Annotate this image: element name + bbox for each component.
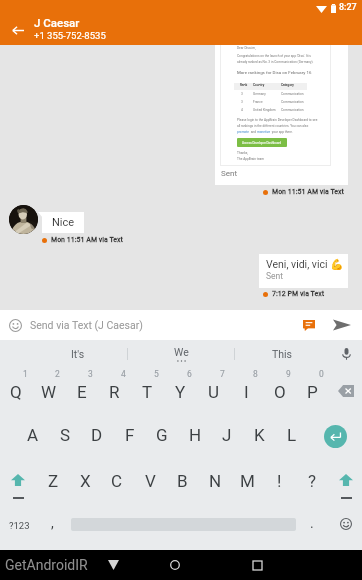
staticText: Germany xyxy=(253,92,266,96)
staticText: U xyxy=(208,382,220,402)
button[interactable]: C xyxy=(101,457,133,503)
button[interactable]: Shift xyxy=(1,457,35,503)
button[interactable]: S xyxy=(49,411,81,457)
staticText: France xyxy=(253,100,263,104)
button[interactable]: ? xyxy=(296,457,328,503)
staticText: Veni, vidi, vici 💪 xyxy=(266,258,344,270)
staticText: L xyxy=(287,425,297,445)
staticText: your app there. xyxy=(271,130,293,134)
staticText: ? xyxy=(308,471,317,491)
button[interactable]: M xyxy=(231,457,263,503)
staticText: 7:12 PM via Text xyxy=(272,290,325,298)
staticText: 2 xyxy=(55,369,60,379)
staticText: More rankings for Disa on February 16 xyxy=(237,70,312,75)
staticText: 6 xyxy=(187,369,192,379)
staticText: X xyxy=(80,471,91,491)
staticText: all rankings in the different countries.… xyxy=(237,124,309,128)
button[interactable]: 8 xyxy=(230,367,263,411)
staticText: 8:27 xyxy=(339,2,357,13)
staticText: This xyxy=(272,348,293,360)
button[interactable]: B xyxy=(166,457,198,503)
button[interactable]: A xyxy=(17,411,49,457)
staticText: I xyxy=(244,382,249,402)
staticText: S xyxy=(60,425,71,445)
staticText: The AppBrain team xyxy=(237,157,265,161)
staticText: 7 xyxy=(220,369,225,379)
button[interactable]: 5 xyxy=(131,367,164,411)
button[interactable]: Choose app xyxy=(298,314,320,336)
button[interactable]: J xyxy=(211,411,243,457)
staticText: W xyxy=(41,382,57,402)
button[interactable]: L xyxy=(276,411,308,457)
button[interactable]: It's xyxy=(28,340,128,367)
button[interactable]: X xyxy=(69,457,101,503)
button[interactable]: ?123 xyxy=(2,503,37,550)
button[interactable]: Emoji keyboard xyxy=(329,503,362,550)
staticText: We xyxy=(174,346,189,358)
staticText: D xyxy=(91,425,103,445)
staticText: M xyxy=(240,471,255,491)
button[interactable]: V xyxy=(134,457,166,503)
button[interactable]: Enter xyxy=(312,411,359,457)
staticText: R xyxy=(109,382,120,402)
button[interactable]: , xyxy=(36,503,69,550)
staticText: K xyxy=(254,425,265,445)
button[interactable]: 3 xyxy=(65,367,98,411)
button[interactable]: N xyxy=(199,457,231,503)
button[interactable]: H xyxy=(179,411,211,457)
button[interactable]: Home xyxy=(162,552,188,578)
button[interactable]: Back xyxy=(6,19,29,42)
button[interactable]: Send xyxy=(330,313,354,337)
button[interactable]: Recent apps xyxy=(244,552,270,578)
button[interactable]: ! xyxy=(263,457,295,503)
staticText: GetAndroidIR xyxy=(5,557,88,573)
button[interactable]: 7 xyxy=(197,367,230,411)
staticText: Sent xyxy=(221,169,238,178)
button[interactable]: 0 xyxy=(296,367,329,411)
staticText: ?123 xyxy=(9,520,30,531)
staticText: Dear Disa.im, xyxy=(237,46,256,50)
staticText: P xyxy=(307,382,318,402)
staticText: . xyxy=(310,515,314,531)
staticText: 3 xyxy=(88,369,93,379)
staticText: 3 xyxy=(241,100,243,104)
button[interactable]: 1 xyxy=(0,367,32,411)
button[interactable]: G xyxy=(146,411,178,457)
staticText: Mon 11:51 AM via Text xyxy=(51,236,123,244)
button[interactable]: Backspace xyxy=(329,367,362,411)
staticText: H xyxy=(189,425,202,445)
staticText: 4 xyxy=(121,369,126,379)
button[interactable]: 2 xyxy=(32,367,65,411)
staticText: Please login to the AppBrain Developer D… xyxy=(237,118,318,122)
staticText: 8 xyxy=(253,369,258,379)
button[interactable]: Shift xyxy=(329,457,362,503)
button[interactable]: Nice xyxy=(42,212,84,233)
staticText: Access Developer Dashboard xyxy=(242,141,282,145)
button[interactable]: . xyxy=(296,503,328,550)
staticText: Q xyxy=(10,382,22,402)
staticText: B xyxy=(177,471,188,491)
button[interactable]: Insert emoji xyxy=(5,315,25,335)
button[interactable]: 4 xyxy=(98,367,131,411)
staticText: 3 xyxy=(241,92,243,96)
staticText: , xyxy=(51,515,54,531)
staticText: Mon 11:51 AM via Text xyxy=(272,188,344,196)
button[interactable]: Veni, vidi, vici 💪 xyxy=(259,254,348,288)
button[interactable]: F xyxy=(114,411,146,457)
button[interactable]: We xyxy=(130,340,232,367)
button[interactable]: Dear Disa.im, xyxy=(215,44,348,185)
button[interactable]: Voice input xyxy=(330,340,362,367)
button[interactable]: Access Developer Dashboard xyxy=(237,138,287,147)
staticText: Nice xyxy=(52,216,75,229)
staticText: +1 355-752-8535 xyxy=(34,30,106,41)
staticText: It's xyxy=(71,348,85,360)
button[interactable]: This xyxy=(232,340,333,367)
button[interactable]: 9 xyxy=(263,367,296,411)
button[interactable]: Back xyxy=(100,552,126,578)
button[interactable]: Z xyxy=(37,457,69,503)
button[interactable]: 6 xyxy=(164,367,197,411)
button[interactable]: D xyxy=(81,411,113,457)
staticText: Congratulations on the launch of your ap… xyxy=(237,54,311,58)
button[interactable]: K xyxy=(243,411,275,457)
